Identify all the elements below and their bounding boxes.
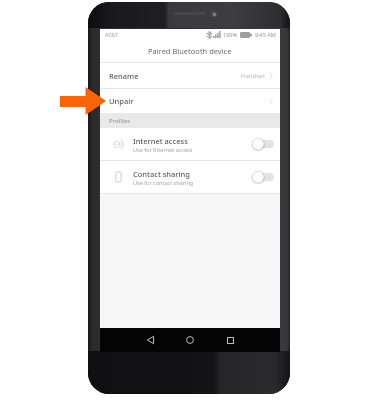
staticText: 100% [223, 31, 238, 38]
staticText: Unpair [109, 96, 134, 106]
button[interactable]: Unpair [100, 89, 280, 113]
button[interactable]: Internet access [248, 137, 274, 151]
staticText: Profiles [109, 117, 131, 125]
staticText: Use for Internet access [133, 146, 193, 153]
staticText: Internet access [133, 136, 188, 146]
button[interactable]: Home [179, 328, 201, 352]
button[interactable]: Back [139, 328, 161, 352]
button[interactable]: Contact sharing [100, 161, 280, 193]
staticText: Handset [241, 72, 265, 80]
button[interactable]: Rename [100, 63, 280, 88]
button[interactable]: Contact sharing [248, 170, 274, 184]
staticText: AT&T [105, 31, 118, 38]
button[interactable]: Internet access [100, 128, 280, 160]
staticText: 9:45 AM [255, 31, 276, 38]
staticText: Use for contact sharing [133, 179, 194, 186]
staticText: Paired Bluetooth device [148, 46, 232, 56]
button[interactable]: Recent apps [219, 328, 241, 352]
staticText: Rename [109, 71, 139, 81]
staticText: Contact sharing [133, 169, 190, 179]
